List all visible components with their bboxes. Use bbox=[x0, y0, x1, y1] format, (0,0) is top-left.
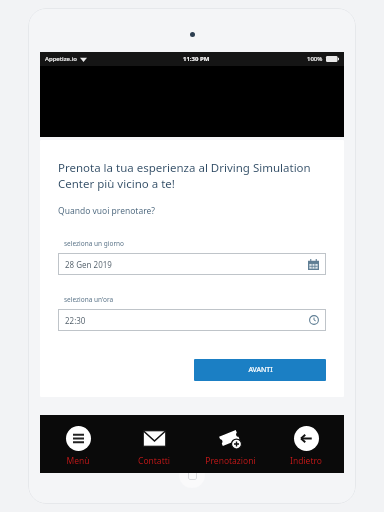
button[interactable]: Menù bbox=[40, 415, 116, 473]
staticText: Indietro bbox=[290, 455, 322, 467]
staticText: 100% bbox=[307, 55, 323, 63]
staticText: Quando vuoi prenotare? bbox=[58, 205, 156, 217]
staticText: 11:30 PM bbox=[183, 55, 210, 63]
button[interactable]: Home bbox=[179, 462, 205, 488]
staticText: AVANTI bbox=[248, 365, 273, 375]
staticText: seleziona un'ora bbox=[64, 295, 114, 304]
staticText: Contatti bbox=[138, 455, 170, 467]
button[interactable]: Open calendar bbox=[58, 253, 326, 275]
button[interactable]: Contatti bbox=[116, 415, 192, 473]
staticText: Appetize.io bbox=[45, 55, 77, 63]
staticText: 22:30 bbox=[65, 315, 86, 326]
staticText: seleziona un giorno bbox=[64, 239, 125, 248]
staticText: Prenota la tua esperienza al Driving Sim… bbox=[58, 160, 326, 191]
staticText: Menù bbox=[66, 455, 90, 467]
button[interactable]: Indietro bbox=[268, 415, 344, 473]
button[interactable]: Open clock bbox=[58, 309, 326, 331]
staticText: Prenotazioni bbox=[205, 455, 256, 467]
staticText: 28 Gen 2019 bbox=[65, 259, 112, 270]
button[interactable]: AVANTI bbox=[194, 359, 326, 381]
button[interactable]: Prenotazioni bbox=[192, 415, 268, 473]
